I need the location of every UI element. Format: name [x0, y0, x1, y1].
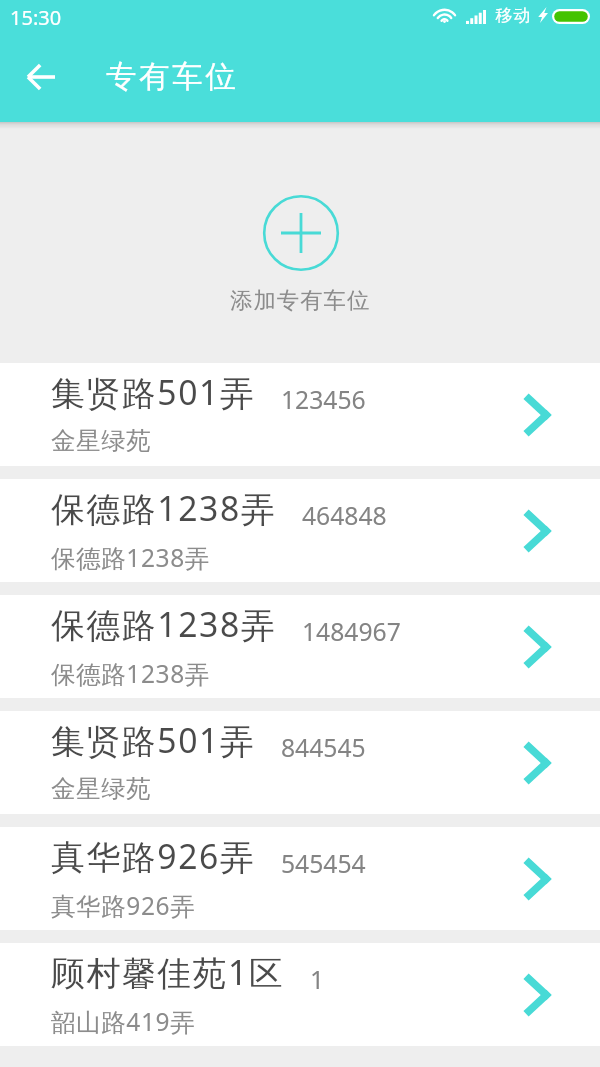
staticText: 集贤路501弄 — [51, 369, 256, 415]
staticText: 集贤路501弄 — [51, 717, 256, 763]
staticText: 金星绿苑 — [51, 773, 152, 804]
button[interactable]: 真华路926弄 — [0, 827, 600, 930]
button[interactable]: 返回 — [0, 46, 76, 122]
staticText: 移动 — [495, 5, 531, 26]
staticText: 保德路1238弄 — [51, 657, 210, 690]
staticText: 保德路1238弄 — [51, 485, 277, 531]
staticText: 15:30 — [10, 4, 62, 31]
staticText: 844545 — [281, 731, 366, 765]
button[interactable]: 保德路1238弄 — [0, 595, 600, 698]
staticText: 添加专有车位 — [230, 286, 371, 314]
staticText: 真华路926弄 — [51, 889, 196, 922]
staticText: 顾村馨佳苑1区 — [51, 949, 285, 995]
button[interactable]: 集贤路501弄 — [0, 711, 600, 814]
staticText: 金星绿苑 — [51, 425, 152, 456]
staticText: 123456 — [281, 383, 366, 417]
staticText: 专有车位 — [106, 58, 239, 96]
staticText: 1 — [310, 963, 325, 997]
staticText: 保德路1238弄 — [51, 601, 277, 647]
button[interactable]: 添加专有车位 — [230, 195, 371, 314]
staticText: 545454 — [281, 847, 366, 881]
button[interactable]: 保德路1238弄 — [0, 479, 600, 582]
button[interactable]: 顾村馨佳苑1区 — [0, 943, 600, 1046]
staticText: 1484967 — [302, 615, 401, 649]
button[interactable]: 集贤路501弄 — [0, 363, 600, 466]
staticText: 韶山路419弄 — [51, 1005, 196, 1038]
staticText: 464848 — [302, 499, 387, 533]
staticText: 保德路1238弄 — [51, 541, 210, 574]
staticText: 真华路926弄 — [51, 833, 256, 879]
